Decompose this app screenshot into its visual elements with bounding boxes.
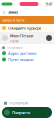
staticText: ‹ — [3, 8, 5, 16]
button[interactable]: Call — [46, 35, 52, 41]
staticText: Получить — [12, 110, 30, 115]
staticText: Курьер — [10, 39, 19, 43]
staticText: Пункт выдачи — [8, 57, 33, 62]
staticText: Иван Петров — [10, 33, 33, 38]
button[interactable]: Back — [2, 8, 6, 15]
staticText: Заказ в пути — [2, 17, 24, 23]
staticText: Подтверждаю — [9, 101, 28, 105]
staticText: Получатель — [7, 46, 22, 49]
staticText: Адрес доставки — [8, 50, 36, 56]
button[interactable]: Получить — [2, 107, 52, 118]
staticText: 9:41 — [45, 1, 52, 7]
staticText: Заказ — [8, 9, 18, 15]
staticText: Ожидайте курьера — [8, 25, 41, 31]
